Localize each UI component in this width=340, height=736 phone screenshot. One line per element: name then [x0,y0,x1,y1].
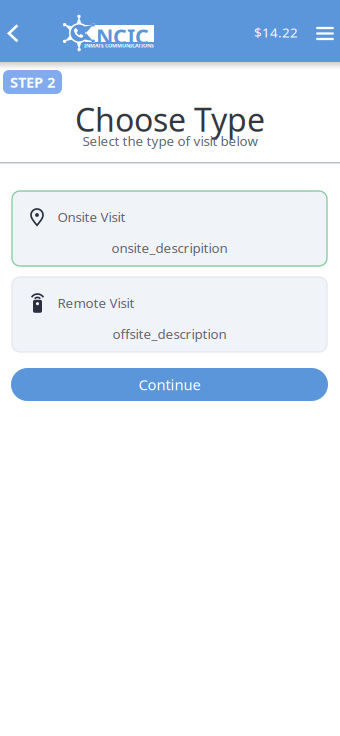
button[interactable]: Onsite Visit [12,191,327,266]
staticText: Continue [138,375,200,394]
staticText: onsite_descripition [111,239,227,257]
button[interactable]: Remote Visit [12,277,327,352]
staticText: STEP 2 [10,72,55,92]
staticText: NCIC [96,22,149,50]
staticText: $14.22 [254,23,298,41]
staticText: Select the type of visit below [82,132,257,150]
staticText: INMATE COMMUNICATIONS [84,42,154,49]
staticText: offsite_description [112,325,226,343]
button[interactable]: Continue [11,368,328,401]
staticText: Remote Visit [57,294,134,312]
staticText: Onsite Visit [57,208,125,226]
button[interactable]: Menu [310,16,340,50]
button[interactable]: Back [0,11,30,55]
staticText: Choose Type [75,98,265,140]
